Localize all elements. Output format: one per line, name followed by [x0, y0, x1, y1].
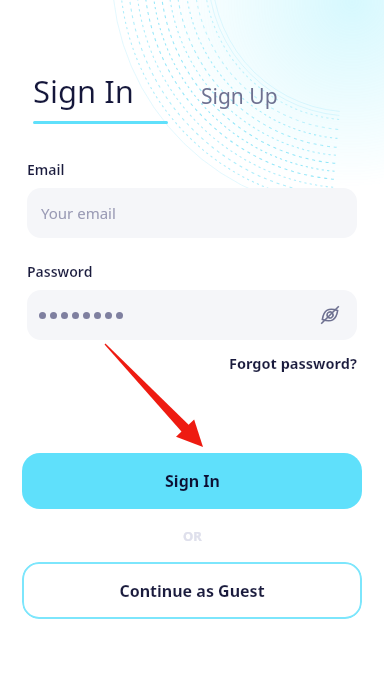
staticText: Continue as Guest — [119, 580, 265, 602]
button[interactable]: Continue as Guest — [22, 562, 362, 619]
button[interactable]: Sign Up — [201, 82, 278, 124]
staticText: Email — [27, 160, 65, 179]
staticText: Sign In — [33, 70, 134, 112]
staticText: Sign In — [165, 470, 220, 492]
button[interactable]: Sign In — [22, 453, 362, 509]
staticText: OR — [183, 527, 202, 545]
staticText: Your email — [41, 203, 116, 223]
staticText: Password — [27, 262, 93, 281]
button[interactable]: Show password — [315, 300, 345, 330]
button[interactable]: Forgot password? — [229, 353, 357, 373]
staticText: Sign Up — [201, 82, 278, 111]
button[interactable]: Show password — [27, 290, 357, 340]
button[interactable]: Your email — [27, 188, 357, 238]
button[interactable]: Sign In — [33, 70, 168, 124]
staticText: Forgot password? — [229, 353, 357, 373]
